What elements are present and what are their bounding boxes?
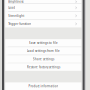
staticText: Share settings	[33, 57, 54, 61]
button[interactable]: Load	[5, 4, 82, 12]
staticText: Trigger function	[8, 22, 31, 26]
button[interactable]: Brightness	[5, 0, 82, 3]
staticText: Load	[8, 6, 15, 10]
staticText: Brightness	[8, 0, 23, 4]
button[interactable]: Product information	[5, 82, 82, 90]
staticText: Save settings to file	[29, 41, 58, 45]
staticText: Streetlight	[8, 14, 24, 18]
staticText: Load settings from file	[27, 49, 60, 53]
button[interactable]: Trigger function	[5, 20, 82, 28]
button[interactable]: Share settings	[5, 55, 82, 63]
button[interactable]: Streetlight	[5, 12, 82, 20]
staticText: Product information	[28, 84, 58, 88]
button[interactable]: Restore factory settings	[5, 63, 82, 71]
staticText: Restore factory settings	[27, 65, 60, 69]
button[interactable]: Save settings to file	[5, 39, 82, 47]
button[interactable]: Load settings from file	[5, 47, 82, 55]
